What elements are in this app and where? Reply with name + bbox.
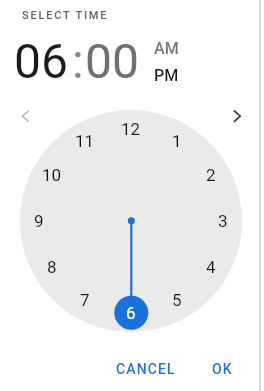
button[interactable]: 00: [85, 33, 139, 89]
staticText: 10: [42, 165, 62, 185]
staticText: SELECT TIME: [22, 9, 109, 22]
staticText: :: [72, 33, 84, 89]
button[interactable]: CANCEL: [102, 352, 190, 386]
staticText: CANCEL: [116, 361, 176, 377]
button[interactable]: [223, 102, 251, 130]
staticText: PM: [154, 66, 179, 85]
staticText: AM: [154, 39, 179, 58]
staticText: 9: [34, 211, 44, 231]
button[interactable]: OK: [199, 352, 245, 386]
staticText: 7: [80, 290, 90, 310]
button[interactable]: [12, 102, 40, 130]
staticText: OK: [212, 361, 233, 377]
staticText: 1: [172, 131, 182, 151]
staticText: 12: [121, 119, 141, 139]
staticText: 2: [206, 165, 216, 185]
staticText: 8: [47, 257, 57, 277]
staticText: 4: [206, 257, 216, 277]
button[interactable]: AM: [147, 36, 185, 60]
button[interactable]: PM: [147, 63, 185, 87]
button[interactable]: 06: [14, 33, 68, 89]
staticText: 5: [172, 290, 182, 310]
staticText: 11: [75, 131, 95, 151]
staticText: 3: [218, 211, 228, 231]
staticText: 6: [126, 303, 136, 323]
